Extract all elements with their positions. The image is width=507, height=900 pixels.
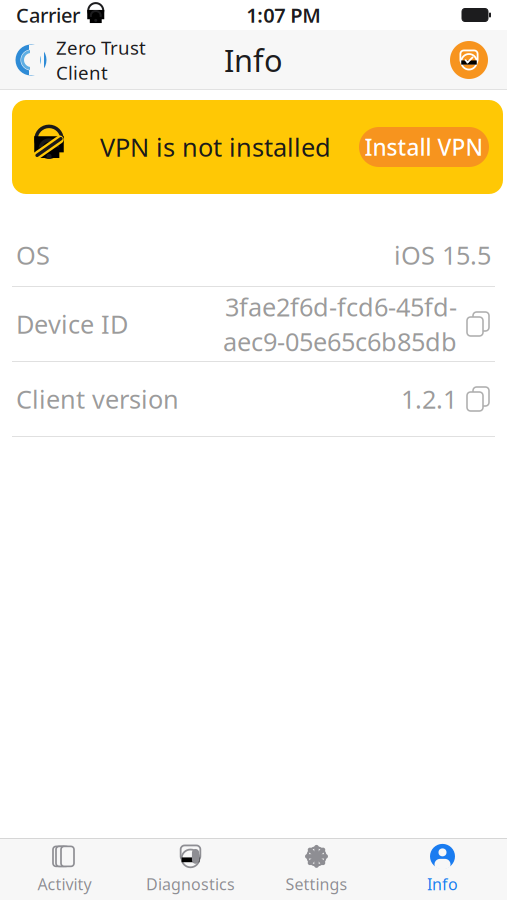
button[interactable]: Install VPN: [359, 127, 489, 167]
staticText: Zero Trust: [56, 35, 146, 60]
staticText: Client version: [16, 382, 179, 416]
staticText: OS: [16, 238, 50, 272]
staticText: Carrier: [16, 2, 80, 28]
button[interactable]: Protection status: [447, 38, 491, 82]
staticText: Info: [224, 40, 283, 80]
staticText: VPN is not installed: [100, 130, 331, 164]
button[interactable]: Info: [379, 839, 505, 899]
staticText: Client: [56, 60, 108, 85]
button[interactable]: Settings: [253, 839, 379, 899]
staticText: Settings: [285, 873, 347, 895]
button[interactable]: Client version: [12, 362, 495, 436]
button[interactable]: Device ID: [12, 287, 495, 361]
staticText: 1.2.1: [401, 382, 457, 416]
staticText: 3fae2f6d-fcd6-45fd-: [225, 290, 457, 323]
button[interactable]: Diagnostics: [127, 839, 253, 899]
staticText: Activity: [37, 873, 91, 895]
staticText: Install VPN: [364, 132, 483, 162]
button[interactable]: Activity: [1, 839, 127, 899]
staticText: Diagnostics: [146, 873, 235, 895]
staticText: Device ID: [16, 307, 128, 341]
button[interactable]: OS: [12, 224, 495, 286]
staticText: iOS 15.5: [394, 238, 491, 272]
staticText: aec9-05e65c6b85db: [223, 324, 457, 358]
staticText: 1:07 PM: [246, 2, 321, 28]
staticText: Info: [427, 873, 458, 895]
